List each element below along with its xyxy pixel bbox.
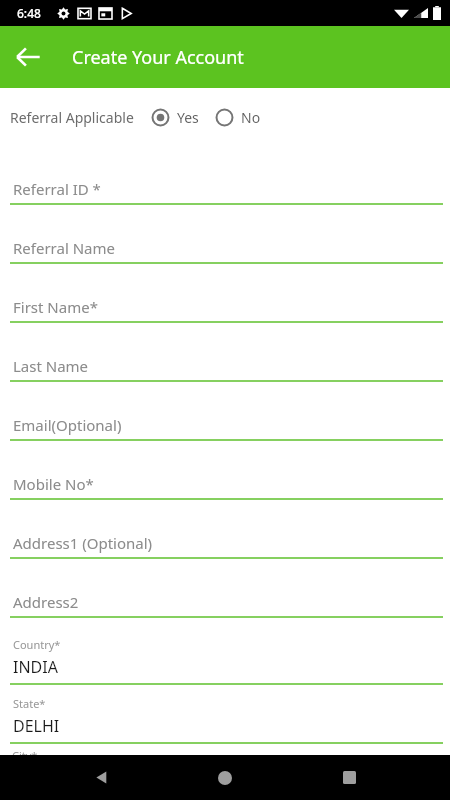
staticText: Referral ID * <box>13 179 101 199</box>
staticText: Create Your Account <box>72 45 244 70</box>
staticText: Mobile No* <box>13 474 94 494</box>
staticText: State* <box>13 696 46 711</box>
button[interactable]: No <box>213 108 263 127</box>
button[interactable]: Back <box>6 35 50 79</box>
button[interactable]: Email(Optional) <box>0 393 450 452</box>
button[interactable]: Back <box>78 755 124 800</box>
staticText: City* <box>12 748 38 763</box>
button[interactable]: Yes <box>149 108 201 127</box>
staticText: Country* <box>13 637 61 652</box>
button[interactable]: Address2 <box>0 570 450 629</box>
staticText: Referral Applicable <box>10 108 134 127</box>
staticText: INDIA <box>13 656 58 678</box>
staticText: Last Name <box>13 356 89 376</box>
button[interactable]: Address1 (Optional) <box>0 511 450 570</box>
staticText: Email(Optional) <box>13 415 122 435</box>
staticText: Referral Name <box>13 238 115 258</box>
button[interactable]: Last Name <box>0 334 450 393</box>
button[interactable]: Referral Name <box>0 216 450 275</box>
staticText: 6:48 <box>17 5 41 21</box>
button[interactable]: First Name* <box>0 275 450 334</box>
staticText: Yes <box>177 108 199 127</box>
staticText: Address1 (Optional) <box>13 533 153 553</box>
staticText: First Name* <box>13 297 98 317</box>
button[interactable]: State* <box>0 688 450 747</box>
button[interactable]: Recent apps <box>326 755 372 800</box>
button[interactable]: Referral ID * <box>0 157 450 216</box>
button[interactable]: Country* <box>0 629 450 688</box>
staticText: DELHI <box>13 715 60 737</box>
staticText: Address2 <box>13 592 79 612</box>
button[interactable]: Home <box>202 755 248 800</box>
staticText: No <box>241 108 261 127</box>
button[interactable]: Mobile No* <box>0 452 450 511</box>
